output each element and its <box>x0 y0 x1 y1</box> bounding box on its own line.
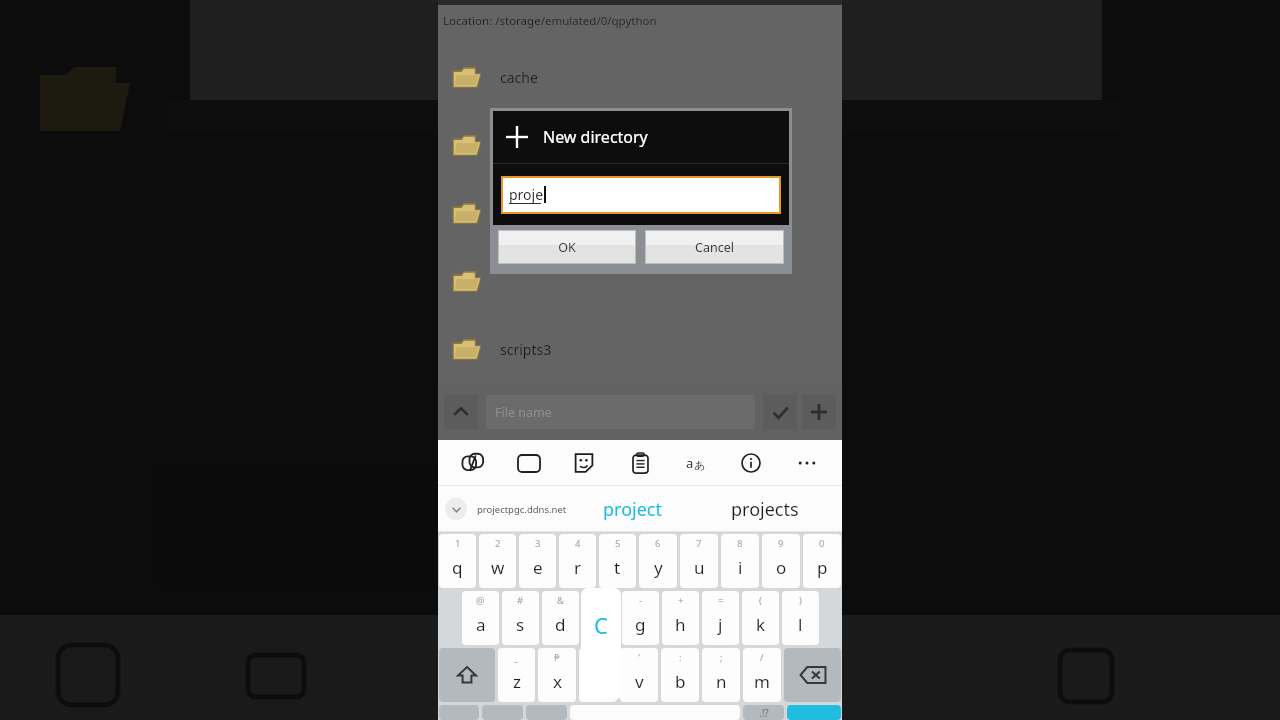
button[interactable]: projects <box>687 486 842 532</box>
staticText: j <box>718 613 723 636</box>
staticText: ( <box>759 594 762 607</box>
staticText: _ <box>514 651 519 664</box>
staticText: x <box>553 670 562 693</box>
button[interactable]: Stickers <box>567 446 601 480</box>
button[interactable]: 0 <box>803 534 841 588</box>
button[interactable]: # <box>502 591 539 645</box>
button[interactable]: + <box>662 591 699 645</box>
button[interactable]: OK <box>498 230 636 264</box>
staticText: a <box>686 454 694 472</box>
staticText: 6 <box>655 537 661 550</box>
button[interactable]: projectpgc.ddns.net <box>467 486 577 532</box>
button[interactable]: Cancel <box>645 230 784 264</box>
button[interactable]: cache <box>438 60 842 94</box>
button[interactable]: & <box>542 591 579 645</box>
staticText: 3 <box>535 537 541 550</box>
staticText: l <box>798 613 803 636</box>
staticText: d <box>555 613 566 636</box>
button[interactable]: / <box>743 648 781 702</box>
button[interactable]: New directory <box>493 111 789 163</box>
staticText: w <box>491 556 505 579</box>
button[interactable]: 2 <box>479 534 516 588</box>
button[interactable]: 4 <box>559 534 596 588</box>
button[interactable]: ( <box>742 591 779 645</box>
staticText: z <box>513 670 521 693</box>
staticText: あ <box>694 458 706 472</box>
button[interactable]: New <box>802 395 836 429</box>
staticText: u <box>694 556 705 579</box>
staticText: File name <box>495 404 552 421</box>
staticText: 9 <box>778 537 784 550</box>
staticText: @ <box>476 594 485 607</box>
button[interactable] <box>438 264 842 298</box>
button[interactable]: More <box>790 446 824 480</box>
button[interactable]: 5 <box>599 534 636 588</box>
button[interactable]: GIF <box>512 446 546 480</box>
button[interactable]: 8 <box>721 534 759 588</box>
button[interactable]: Clipboard <box>623 446 657 480</box>
staticText: 5 <box>615 537 621 550</box>
staticText: : <box>679 651 682 664</box>
button[interactable]: Symbols <box>439 705 479 720</box>
staticText: scripts3 <box>500 340 552 359</box>
staticText: & <box>557 594 564 607</box>
button[interactable]: Info <box>734 446 768 480</box>
button[interactable]: Confirm <box>763 395 797 429</box>
staticText: f <box>598 613 604 636</box>
staticText: Cancel <box>695 239 734 256</box>
button[interactable] <box>438 196 842 230</box>
button[interactable]: Translate <box>679 446 713 480</box>
button[interactable]: Expand <box>445 498 467 520</box>
button[interactable]: : <box>661 648 699 702</box>
button[interactable]: .!? <box>743 705 784 720</box>
staticText: p <box>817 556 828 579</box>
button[interactable]: project <box>577 486 687 532</box>
button[interactable]: = <box>702 591 739 645</box>
staticText: 8 <box>737 537 743 550</box>
staticText: h <box>675 613 686 636</box>
staticText: o <box>776 556 787 579</box>
staticText: 0 <box>819 537 825 550</box>
staticText: project <box>603 497 662 522</box>
button[interactable]: Up <box>444 395 478 429</box>
button[interactable]: Enter <box>787 705 841 720</box>
button[interactable]: Emoji <box>482 705 523 720</box>
button[interactable]: Backspace <box>784 648 841 702</box>
button[interactable]: 1 <box>439 534 476 588</box>
staticText: a <box>476 613 486 636</box>
button[interactable] <box>438 128 842 162</box>
button[interactable]: f <box>582 591 619 645</box>
staticText: cache <box>500 68 538 87</box>
button[interactable]: File name <box>486 395 755 429</box>
button[interactable]: - <box>622 591 659 645</box>
staticText: e <box>533 556 543 579</box>
button[interactable]: Toolbox <box>456 446 490 480</box>
button[interactable]: @ <box>462 591 499 645</box>
staticText: proje <box>509 185 544 204</box>
button[interactable]: 9 <box>762 534 800 588</box>
button[interactable]: ' <box>620 648 658 702</box>
staticText: + <box>678 594 684 607</box>
staticText: k <box>756 613 766 636</box>
button[interactable]: Shift <box>439 648 495 702</box>
button[interactable]: scripts3 <box>438 332 842 366</box>
button[interactable]: 7 <box>680 534 718 588</box>
staticText: projectpgc.ddns.net <box>477 503 567 516</box>
button[interactable]: 6 <box>639 534 677 588</box>
button[interactable]: ; <box>702 648 740 702</box>
button[interactable]: proje <box>501 176 781 214</box>
button[interactable]: Comma <box>526 705 567 720</box>
staticText: # <box>517 594 524 607</box>
staticText: ; <box>720 651 723 664</box>
button[interactable]: ) <box>782 591 819 645</box>
staticText: projects <box>731 497 799 522</box>
staticText: g <box>635 613 646 636</box>
staticText: ' <box>638 651 641 664</box>
staticText: 7 <box>696 537 702 550</box>
button[interactable]: _ <box>498 648 535 702</box>
button[interactable]: 3 <box>519 534 556 588</box>
staticText: C <box>594 610 608 640</box>
button[interactable]: ₱ <box>538 648 576 702</box>
